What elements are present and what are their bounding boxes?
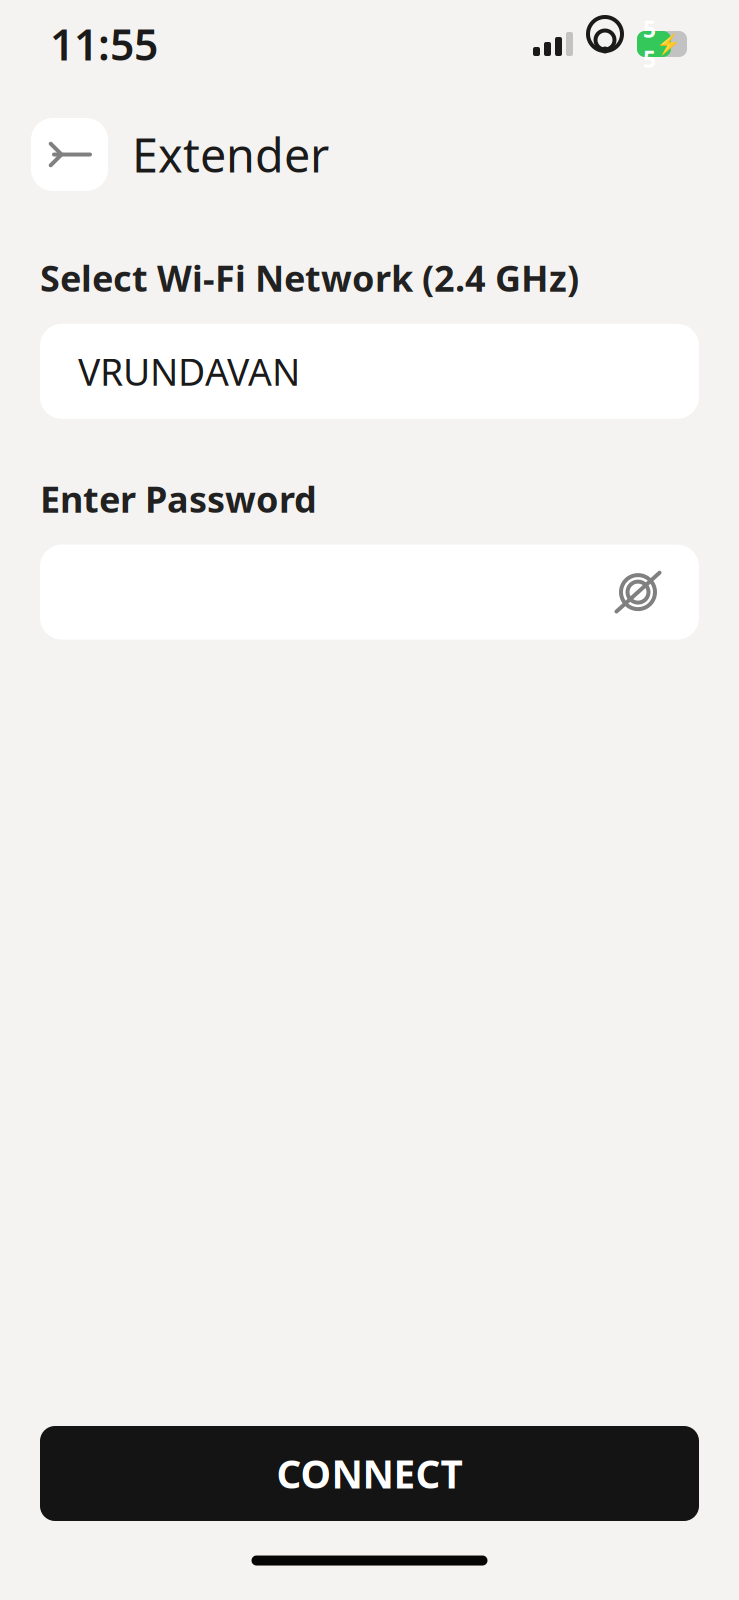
- button[interactable]: VRUNDAVAN: [40, 324, 699, 419]
- button[interactable]: Back: [31, 118, 108, 191]
- button[interactable]: Show password: [601, 555, 675, 629]
- staticText: Select Wi-Fi Network (2.4 GHz): [40, 254, 579, 302]
- staticText: 55: [643, 14, 656, 74]
- staticText: Enter Password: [40, 475, 317, 523]
- button[interactable]: CONNECT: [40, 1426, 699, 1521]
- staticText: CONNECT: [276, 1448, 462, 1499]
- staticText: ⚡: [656, 33, 681, 55]
- staticText: Extender: [132, 123, 329, 185]
- staticText: 11:55: [50, 16, 158, 72]
- staticText: VRUNDAVAN: [78, 346, 300, 396]
